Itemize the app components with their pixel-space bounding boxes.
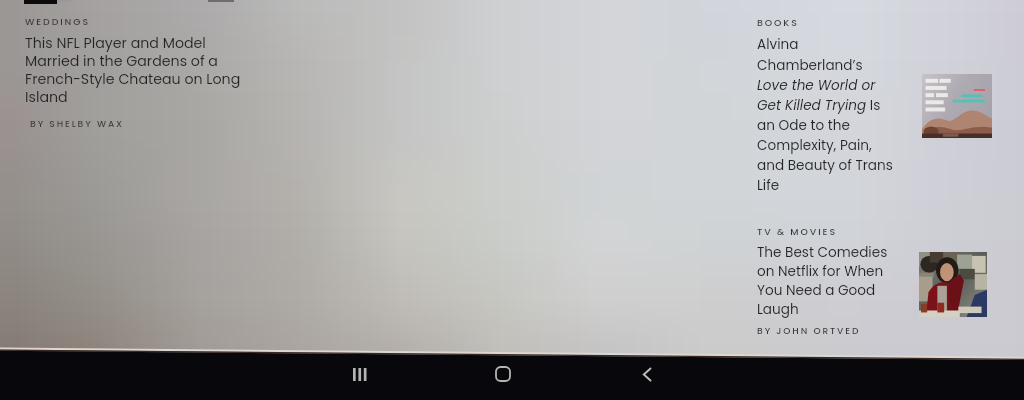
staticText: TV & MOVIES	[757, 225, 837, 238]
staticText: BY JOHN ORTVED	[757, 324, 861, 337]
staticText: WEDDINGS	[25, 15, 90, 28]
staticText: The Best Comedies on Netflix for When Yo…	[757, 243, 888, 319]
button[interactable]: Article photo	[919, 252, 987, 317]
staticText: BOOKS	[757, 16, 799, 29]
button[interactable]: WEDDINGS	[25, 15, 285, 130]
staticText: Alvina Chamberland’s Love the World or G…	[757, 35, 893, 194]
button[interactable]: BOOKS	[757, 16, 917, 194]
button[interactable]: Recent apps	[338, 357, 382, 391]
button[interactable]: TV & MOVIES	[757, 225, 917, 337]
staticText: BY SHELBY WAX	[30, 117, 125, 130]
button[interactable]: Home	[481, 357, 525, 391]
button[interactable]: Book cover: Love the World or Get Killed…	[922, 74, 992, 138]
button[interactable]: Back	[625, 357, 669, 391]
staticText: This NFL Player and Model Married in the…	[25, 33, 241, 107]
